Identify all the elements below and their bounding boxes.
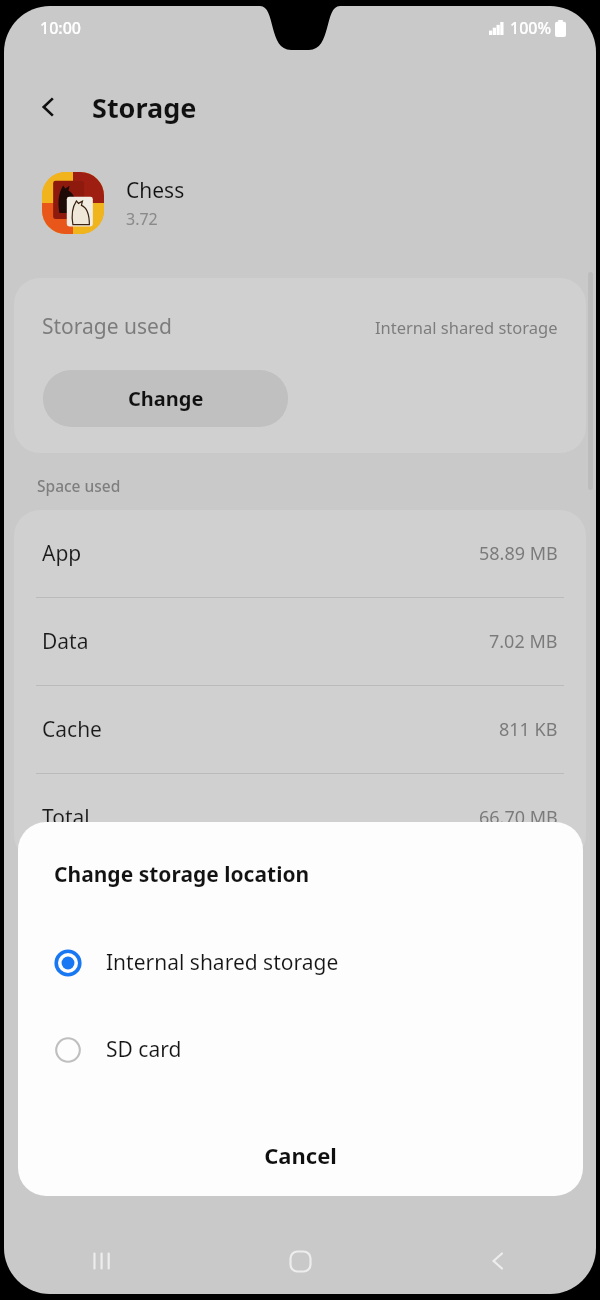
staticText: 3.72 (126, 208, 158, 230)
button[interactable]: Total (14, 774, 586, 861)
button[interactable]: Internal shared storage (18, 919, 583, 1006)
staticText: Chess (126, 176, 185, 205)
staticText: Data (42, 627, 89, 656)
staticText: Storage (92, 89, 197, 126)
staticText: 811 KB (499, 717, 558, 742)
button[interactable]: Clear cache (300, 886, 596, 946)
staticText: Space used (37, 475, 121, 496)
button[interactable]: Clear data (4, 886, 300, 946)
button[interactable]: Cache (14, 686, 586, 773)
staticText: Internal shared storage (375, 316, 558, 338)
staticText: Change (128, 385, 204, 412)
staticText: 100% (510, 17, 552, 39)
button[interactable]: Back (26, 84, 72, 130)
staticText: App (42, 539, 82, 568)
staticText: Internal shared storage (106, 948, 339, 977)
staticText: Total (42, 803, 90, 832)
staticText: Cancel (264, 1140, 337, 1170)
staticText: 10:00 (40, 17, 81, 39)
button[interactable]: Cancel (18, 1114, 583, 1196)
staticText: SD card (106, 1035, 182, 1064)
staticText: 58.89 MB (479, 541, 558, 566)
button[interactable]: Home (202, 1228, 399, 1294)
staticText: Storage used (42, 312, 172, 341)
button[interactable]: Data (14, 598, 586, 685)
button[interactable]: Change (43, 370, 288, 427)
button[interactable]: Recents (4, 1228, 202, 1294)
button[interactable]: Back (399, 1228, 596, 1294)
staticText: 66.70 MB (479, 805, 558, 830)
staticText: 7.02 MB (489, 629, 558, 654)
staticText: Change storage location (54, 860, 310, 889)
button[interactable]: App (14, 510, 586, 597)
button[interactable]: SD card (18, 1006, 583, 1093)
staticText: Cache (42, 715, 102, 744)
